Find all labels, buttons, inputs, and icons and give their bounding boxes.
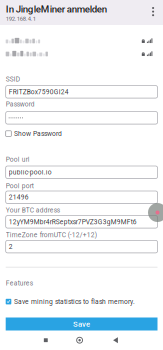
- staticText: Password: [6, 100, 35, 108]
- button[interactable]: Home: [66, 333, 94, 347]
- button[interactable]: Wi-Fi network: [0, 50, 163, 58]
- button[interactable]: Save: [6, 317, 157, 330]
- staticText: Features: [6, 279, 33, 287]
- button[interactable]: Save mining statistics to flash memory.: [6, 298, 135, 306]
- staticText: In JingleMiner anmelden: [6, 3, 107, 15]
- staticText: FRITZBox7590GI24: [9, 88, 69, 96]
- button[interactable]: Back: [101, 333, 129, 347]
- staticText: Your BTC address: [6, 206, 60, 214]
- button[interactable]: Recents: [32, 333, 60, 347]
- staticText: public-pool.io: [9, 168, 52, 176]
- staticText: Pool port: [6, 182, 34, 190]
- staticText: 2: [9, 243, 13, 250]
- button[interactable]: More options: [147, 4, 161, 20]
- staticText: SSID: [6, 75, 20, 83]
- button[interactable]: Wi-Fi network: [0, 37, 163, 45]
- button[interactable]: Show Password: [6, 130, 62, 138]
- staticText: Save mining statistics to flash memory.: [14, 298, 135, 305]
- staticText: Show Password: [14, 130, 62, 137]
- staticText: 12yYM9Mbr4rRSeptxsr7PVZ3G3gM9MFt6: [9, 218, 137, 226]
- staticText: TimeZone fromUTC (-12/+12): [6, 231, 97, 239]
- staticText: Pool url: [6, 156, 30, 163]
- staticText: 192.168.4.1: [6, 15, 36, 22]
- staticText: 21496: [9, 193, 29, 201]
- staticText: Save: [73, 319, 90, 329]
